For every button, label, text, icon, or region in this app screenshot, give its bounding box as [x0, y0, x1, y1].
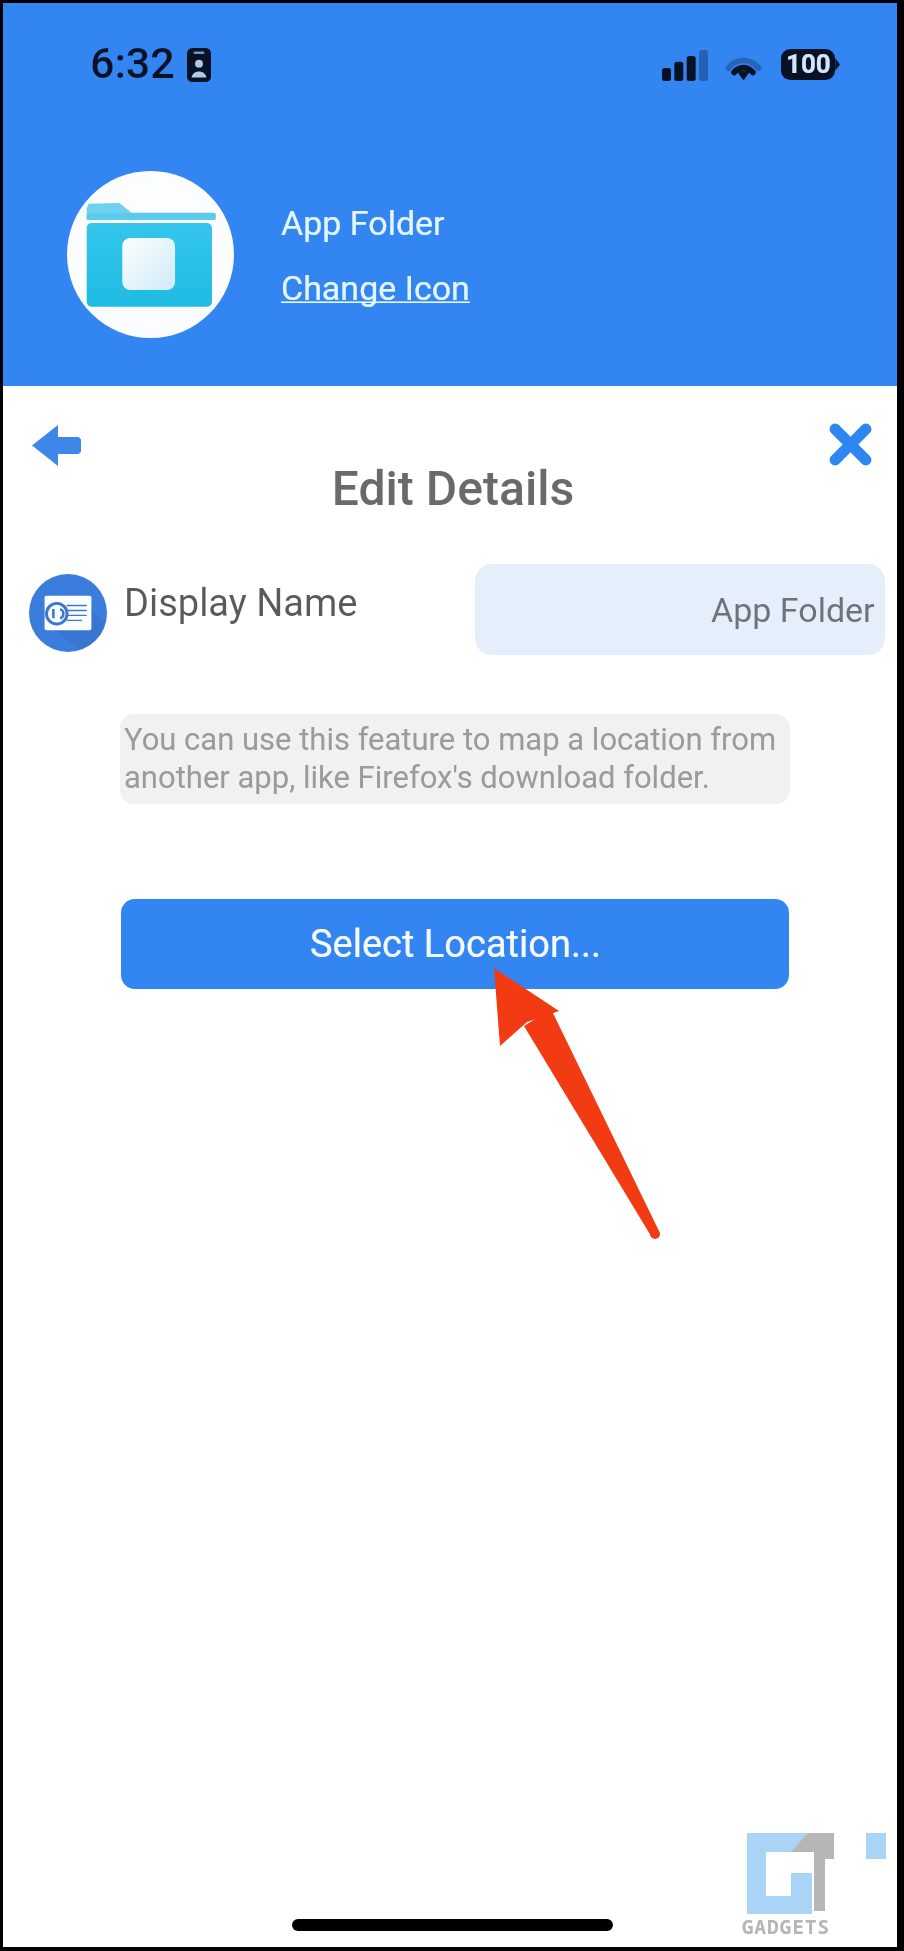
staticText: 100 — [786, 49, 831, 79]
staticText: Display Name — [124, 581, 358, 626]
button[interactable]: Close — [806, 400, 894, 488]
button[interactable]: Back — [12, 401, 100, 489]
staticText: App Folder — [281, 203, 445, 243]
staticText: 6:32 — [90, 38, 175, 88]
staticText: Change Icon — [281, 268, 470, 308]
button[interactable]: Select Location... — [121, 899, 789, 989]
staticText: Edit Details — [6, 460, 900, 516]
button[interactable]: Change Icon — [281, 268, 470, 308]
staticText: another app, like Firefox's download fol… — [124, 759, 710, 795]
staticText: App Folder — [711, 590, 875, 630]
button[interactable]: App Folder — [475, 564, 885, 655]
staticText: You can use this feature to map a locati… — [124, 721, 777, 757]
staticText: GADGETS — [742, 1914, 831, 1940]
staticText: Select Location... — [310, 922, 601, 967]
button[interactable] — [67, 171, 234, 338]
